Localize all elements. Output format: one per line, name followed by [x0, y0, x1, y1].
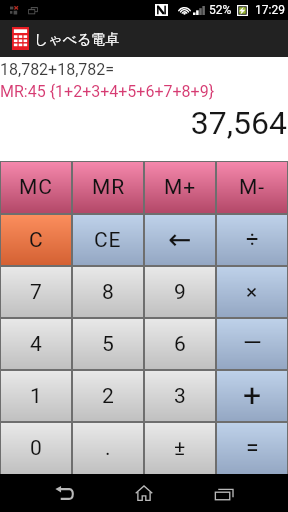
staticText: M-: [239, 175, 265, 200]
staticText: ×: [246, 280, 258, 305]
button[interactable]: 3: [145, 371, 215, 421]
button[interactable]: MC: [1, 162, 71, 213]
staticText: 52%: [209, 3, 232, 17]
button[interactable]: 5: [73, 319, 143, 369]
staticText: ÷: [246, 227, 259, 253]
button[interactable]: 7: [1, 267, 71, 317]
button[interactable]: Home: [112, 474, 176, 512]
button[interactable]: M+: [145, 162, 215, 213]
staticText: MC: [19, 175, 53, 200]
staticText: 6: [174, 332, 186, 357]
button[interactable]: =: [217, 423, 287, 474]
staticText: CE: [94, 228, 122, 253]
staticText: 7: [30, 280, 42, 305]
button[interactable]: C: [1, 215, 71, 265]
staticText: 2: [102, 384, 114, 409]
staticText: ±: [174, 436, 186, 461]
staticText: 0: [30, 436, 42, 461]
button[interactable]: 9: [145, 267, 215, 317]
button[interactable]: +: [217, 371, 287, 421]
button[interactable]: MR: [73, 162, 143, 213]
button[interactable]: ×: [217, 267, 287, 317]
staticText: =: [246, 435, 259, 462]
staticText: —: [243, 329, 262, 357]
staticText: 8: [102, 280, 114, 305]
button[interactable]: M-: [217, 162, 287, 213]
staticText: 37,564: [0, 104, 287, 142]
staticText: +: [243, 376, 262, 414]
button[interactable]: ÷: [217, 215, 287, 265]
staticText: 4: [30, 332, 42, 357]
staticText: 17:29: [255, 3, 285, 17]
button[interactable]: ±: [145, 423, 215, 474]
staticText: 1: [30, 384, 42, 409]
staticText: ←: [168, 223, 192, 256]
button[interactable]: 4: [1, 319, 71, 369]
button[interactable]: 2: [73, 371, 143, 421]
button[interactable]: Recent apps: [192, 474, 256, 512]
staticText: MR: [92, 175, 125, 200]
staticText: .: [105, 436, 111, 461]
staticText: MR:45 {1+2+3+4+5+6+7+8+9}: [0, 82, 215, 101]
button[interactable]: —: [217, 319, 287, 369]
staticText: 9: [174, 280, 186, 305]
staticText: M+: [164, 175, 196, 200]
button[interactable]: 0: [1, 423, 71, 474]
button[interactable]: CE: [73, 215, 143, 265]
button[interactable]: 8: [73, 267, 143, 317]
button[interactable]: ←: [145, 215, 215, 265]
button[interactable]: .: [73, 423, 143, 474]
button[interactable]: 1: [1, 371, 71, 421]
staticText: C: [29, 228, 43, 253]
staticText: しゃべる電卓: [34, 31, 120, 49]
staticText: 18,782+18,782=: [0, 60, 115, 79]
button[interactable]: Back: [32, 474, 96, 512]
button[interactable]: 6: [145, 319, 215, 369]
staticText: 5: [102, 332, 114, 357]
staticText: 3: [174, 384, 186, 409]
